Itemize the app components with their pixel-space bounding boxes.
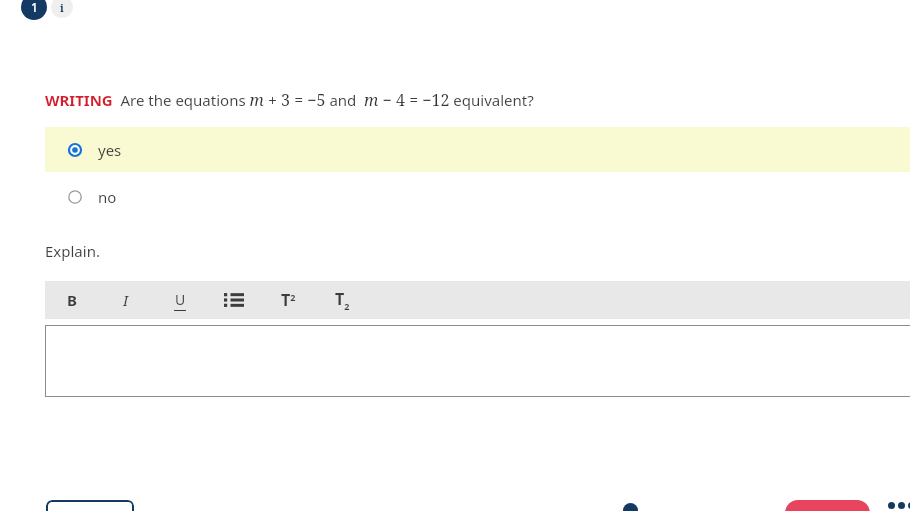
staticText: U: [175, 290, 186, 309]
staticText: no: [98, 187, 117, 207]
button[interactable]: Underline: [153, 281, 207, 319]
button[interactable]: no: [45, 175, 910, 218]
button[interactable]: Submit: [785, 500, 870, 511]
staticText: i: [60, 0, 64, 15]
staticText: T2: [281, 289, 296, 311]
staticText: B: [67, 290, 77, 310]
staticText: WRITING Are the equations m + 3 = −5 and…: [45, 89, 534, 111]
button[interactable]: Bulleted list: [207, 281, 261, 319]
button[interactable]: Menu: [623, 503, 638, 511]
button[interactable]: [45, 325, 910, 397]
button[interactable]: Subscript: [315, 281, 369, 319]
button[interactable]: yes: [45, 127, 910, 172]
button[interactable]: More options: [888, 502, 910, 509]
button[interactable]: Information: [51, 0, 73, 18]
button[interactable]: Italic: [99, 281, 153, 319]
button[interactable]: Superscript: [261, 281, 315, 319]
button[interactable]: Previous: [46, 500, 134, 511]
button[interactable]: 1: [21, 0, 47, 20]
staticText: 1: [31, 0, 38, 15]
button[interactable]: Bold: [45, 281, 99, 319]
staticText: T2: [335, 288, 350, 313]
staticText: I: [123, 291, 129, 310]
staticText: Explain.: [45, 241, 100, 261]
staticText: yes: [98, 140, 122, 160]
